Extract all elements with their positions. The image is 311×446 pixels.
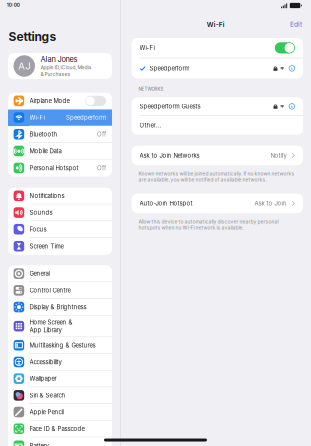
staticText: Bluetooth	[30, 131, 58, 138]
button[interactable]: General	[8, 266, 112, 282]
button[interactable]: Auto-Join Hotspot	[132, 194, 303, 213]
button[interactable]: Wi-Fi	[8, 109, 112, 126]
button[interactable]: Screen Time	[8, 238, 112, 255]
staticText: & Purchases	[40, 71, 70, 77]
button[interactable]: Other...	[132, 116, 303, 135]
button[interactable]: Speedperform Guests	[132, 97, 303, 116]
staticText: Off	[97, 131, 106, 138]
staticText: Edit	[290, 21, 302, 28]
button[interactable]: AJ	[8, 53, 112, 79]
button[interactable]: Focus	[8, 221, 112, 238]
staticText: Other...	[140, 122, 162, 129]
staticText: Off	[97, 164, 106, 172]
staticText: Settings	[9, 29, 57, 44]
staticText: NETWORKS	[139, 86, 164, 92]
button[interactable]: Ask to Join Networks	[132, 146, 303, 165]
button[interactable]: Home Screen &	[8, 316, 112, 337]
button[interactable]: Display & Brightness	[8, 299, 112, 316]
staticText: Display & Brightness	[30, 303, 87, 311]
button[interactable]: Personal Hotspot	[8, 160, 112, 176]
staticText: Speedperform	[149, 65, 189, 72]
staticText: Ask to Join	[254, 200, 286, 207]
staticText: Wi-Fi	[140, 44, 155, 51]
button[interactable]: Bluetooth	[8, 126, 112, 143]
button[interactable]: Wallpaper	[8, 371, 112, 387]
staticText: Alan Jones	[40, 55, 77, 64]
staticText: Allow this device to automatically disco…	[139, 219, 279, 231]
staticText: Apple Pencil	[30, 408, 64, 416]
staticText: Speedperform	[66, 114, 106, 121]
button[interactable]: Face ID & Passcode	[8, 421, 112, 437]
staticText: General	[30, 270, 50, 277]
staticText: Home Screen &	[30, 319, 73, 326]
staticText: Auto-Join Hotspot	[140, 200, 193, 207]
staticText: Notifications	[30, 192, 65, 199]
staticText: Notify	[270, 152, 286, 159]
staticText: Known networks will be joined automatica…	[139, 171, 295, 183]
staticText: Sounds	[30, 209, 53, 216]
staticText: Siri & Search	[30, 392, 66, 399]
button[interactable]: Siri & Search	[8, 387, 112, 404]
staticText: Speedperform Guests	[140, 103, 201, 110]
staticText: 10:00	[7, 2, 20, 8]
staticText: AJ	[18, 60, 30, 72]
button[interactable]: Notifications	[8, 188, 112, 204]
button[interactable]: Multitasking & Gestures	[8, 337, 112, 354]
staticText: Multitasking & Gestures	[30, 342, 96, 349]
button[interactable]: Wi-Fi	[132, 38, 303, 58]
staticText: Ask to Join Networks	[140, 152, 200, 159]
staticText: Screen Time	[30, 243, 64, 250]
button[interactable]: Accessibility	[8, 354, 112, 371]
button[interactable]: Control Centre	[8, 282, 112, 299]
staticText: Accessibility	[30, 358, 62, 366]
button[interactable]: Speedperform	[132, 58, 303, 78]
staticText: Face ID & Passcode	[30, 425, 85, 432]
button[interactable]: Airplane Mode	[8, 93, 112, 109]
button[interactable]: Edit	[290, 21, 302, 28]
staticText: Apple ID, iCloud, Media	[40, 64, 91, 70]
button[interactable]: Sounds	[8, 204, 112, 221]
staticText: Wi-Fi	[30, 114, 45, 121]
staticText: Focus	[30, 226, 47, 233]
button[interactable]: Mobile Data	[8, 143, 112, 160]
button[interactable]: Battery	[8, 437, 112, 446]
staticText: Airplane Mode	[30, 97, 70, 104]
staticText: Wallpaper	[30, 375, 57, 382]
staticText: App Library	[30, 326, 62, 334]
staticText: Control Centre	[30, 287, 71, 294]
button[interactable]: Apple Pencil	[8, 404, 112, 421]
staticText: Battery	[30, 442, 49, 446]
staticText: Mobile Data	[30, 147, 62, 155]
staticText: Personal Hotspot	[30, 164, 79, 172]
staticText: Wi-Fi	[207, 20, 225, 29]
